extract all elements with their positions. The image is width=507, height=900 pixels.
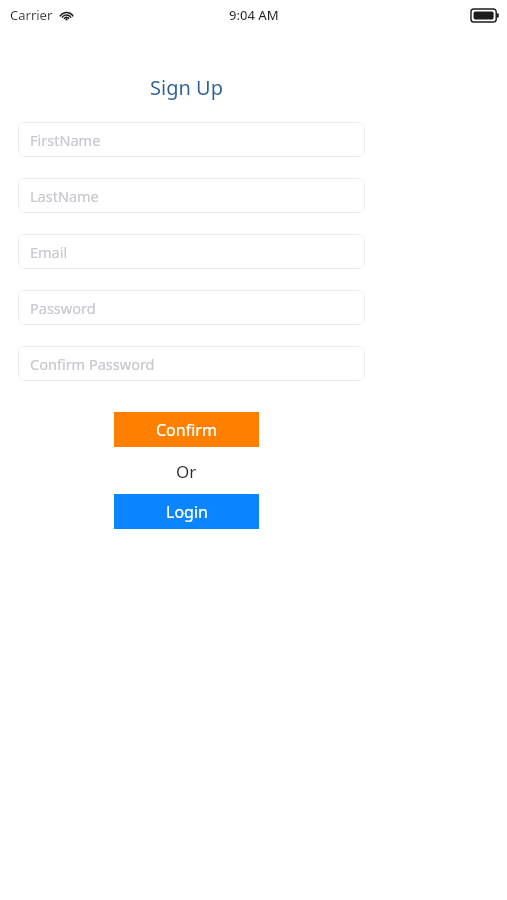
staticText: FirstName xyxy=(30,130,101,150)
staticText: Confirm xyxy=(156,419,217,441)
staticText: Confirm Password xyxy=(30,354,155,374)
staticText: Password xyxy=(30,298,96,318)
staticText: 9:04 AM xyxy=(229,6,279,24)
button[interactable]: Confirm Password xyxy=(18,346,365,381)
button[interactable]: Email xyxy=(18,234,365,269)
button[interactable]: Password xyxy=(18,290,365,325)
button[interactable]: Login xyxy=(114,494,259,529)
staticText: Or xyxy=(176,460,197,483)
button[interactable]: Confirm xyxy=(114,412,259,447)
button[interactable]: LastName xyxy=(18,178,365,213)
staticText: Carrier xyxy=(10,6,53,24)
staticText: LastName xyxy=(30,186,99,206)
staticText: Sign Up xyxy=(0,74,373,101)
staticText: Email xyxy=(30,242,68,262)
staticText: Login xyxy=(166,501,208,523)
button[interactable]: FirstName xyxy=(18,122,365,157)
